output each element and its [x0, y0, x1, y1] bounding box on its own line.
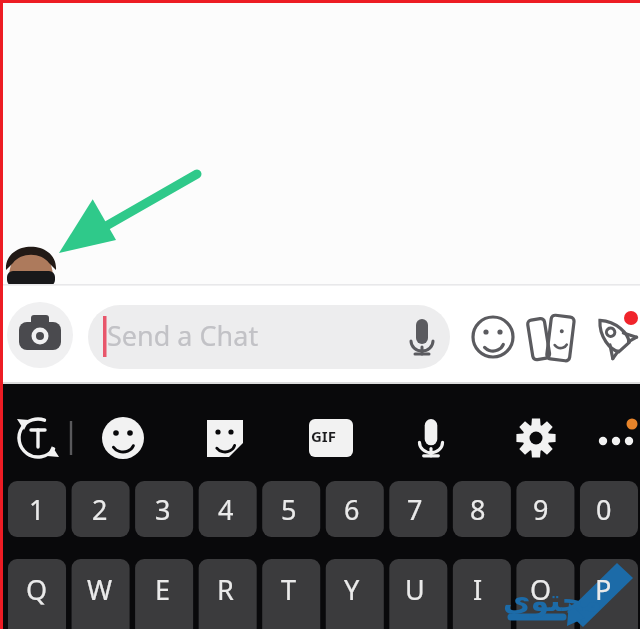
button[interactable]: Key 1 [8, 481, 65, 537]
staticText: P [595, 571, 612, 608]
staticText: I [473, 571, 483, 608]
staticText: Y [344, 571, 360, 608]
button[interactable]: Emoji [462, 305, 518, 363]
button[interactable]: Key 2 [71, 481, 128, 537]
button[interactable]: Key 3 [134, 481, 191, 537]
button[interactable]: Key R [197, 559, 254, 626]
button[interactable]: Stickers [194, 405, 252, 467]
button[interactable]: Key 4 [197, 481, 254, 537]
button[interactable]: Key T [260, 559, 317, 626]
button[interactable]: Key U [386, 559, 443, 626]
staticText: 0 [596, 491, 612, 528]
staticText: U [405, 571, 425, 608]
staticText: 4 [218, 491, 234, 528]
button[interactable]: Key 6 [323, 481, 380, 537]
staticText: E [155, 571, 171, 608]
staticText: W [87, 571, 113, 608]
button[interactable]: Key P [575, 559, 632, 626]
button[interactable]: Key 0 [575, 481, 632, 537]
button[interactable]: Key E [134, 559, 191, 626]
button[interactable]: GIF [298, 405, 358, 467]
button[interactable]: Cards [522, 305, 578, 363]
staticText: 9 [533, 491, 549, 528]
staticText: 5 [281, 491, 297, 528]
staticText: 1 [29, 491, 45, 528]
button[interactable]: Key O [512, 559, 569, 626]
staticText: 6 [344, 491, 360, 528]
button[interactable]: Camera [6, 300, 74, 368]
staticText: T [281, 571, 297, 608]
button[interactable]: Key 7 [386, 481, 443, 537]
staticText: 7 [407, 491, 423, 528]
button[interactable]: Settings [504, 405, 562, 467]
button[interactable]: Key Q [8, 559, 65, 626]
button[interactable]: More options [584, 405, 638, 467]
button[interactable]: Transliterate [8, 405, 66, 467]
staticText: 3 [155, 491, 171, 528]
staticText: Q [26, 571, 48, 608]
staticText: GIF [311, 426, 336, 446]
button[interactable]: Key 8 [449, 481, 506, 537]
button[interactable]: Emoji keyboard [92, 405, 150, 467]
button[interactable]: Rocket [582, 305, 638, 363]
button[interactable]: Key 9 [512, 481, 569, 537]
button[interactable]: Key I [449, 559, 506, 626]
button[interactable]: Key 5 [260, 481, 317, 537]
staticText: 2 [92, 491, 108, 528]
button[interactable]: Voice message [396, 305, 446, 363]
button[interactable]: Key W [71, 559, 128, 626]
staticText: O [530, 571, 552, 608]
staticText: R [217, 571, 234, 608]
staticText: 8 [470, 491, 486, 528]
button[interactable]: Send a Chat [85, 302, 450, 368]
button[interactable]: Voice input [400, 405, 458, 467]
staticText: محتوى [503, 583, 602, 618]
button[interactable]: Key Y [323, 559, 380, 626]
staticText: Send a Chat [107, 317, 259, 354]
